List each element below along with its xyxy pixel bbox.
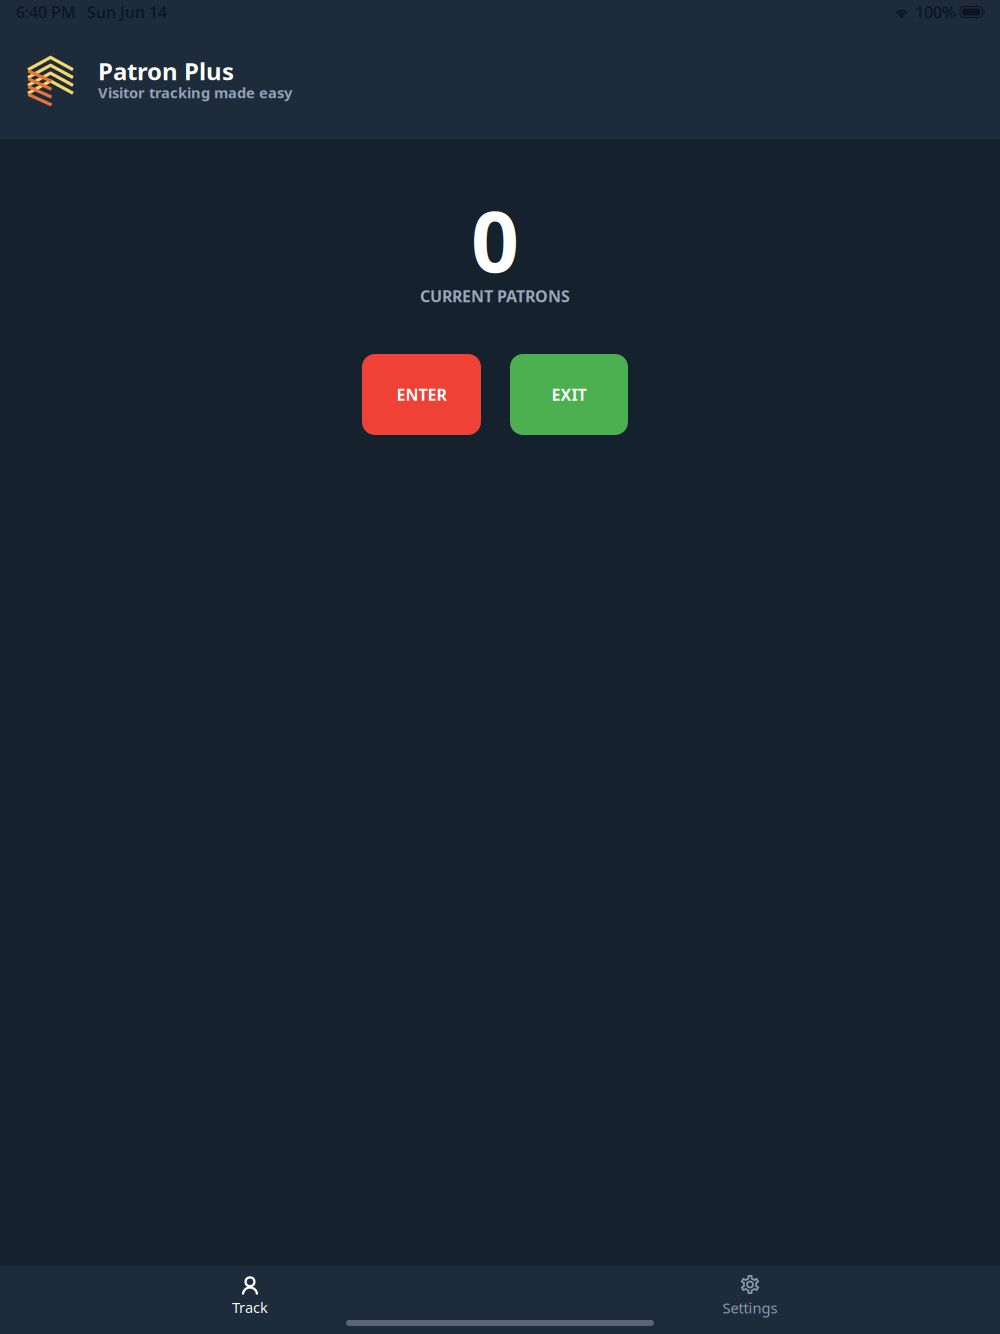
staticText: CURRENT PATRONS (420, 285, 570, 307)
button[interactable]: Track (0, 1273, 500, 1317)
staticText: 100% (915, 1, 956, 23)
button[interactable]: ENTER (362, 354, 481, 435)
staticText: Sun Jun 14 (87, 1, 167, 23)
staticText: Visitor tracking made easy (98, 83, 292, 102)
staticText: Patron Plus (98, 55, 234, 87)
staticText: Track (232, 1297, 268, 1317)
button[interactable]: Settings (500, 1273, 1000, 1317)
button[interactable]: EXIT (510, 354, 628, 435)
staticText: Settings (722, 1298, 777, 1317)
staticText: 6:40 PM (16, 1, 76, 23)
staticText: EXIT (551, 384, 586, 405)
staticText: ENTER (396, 384, 446, 405)
staticText: 0 (471, 184, 519, 295)
